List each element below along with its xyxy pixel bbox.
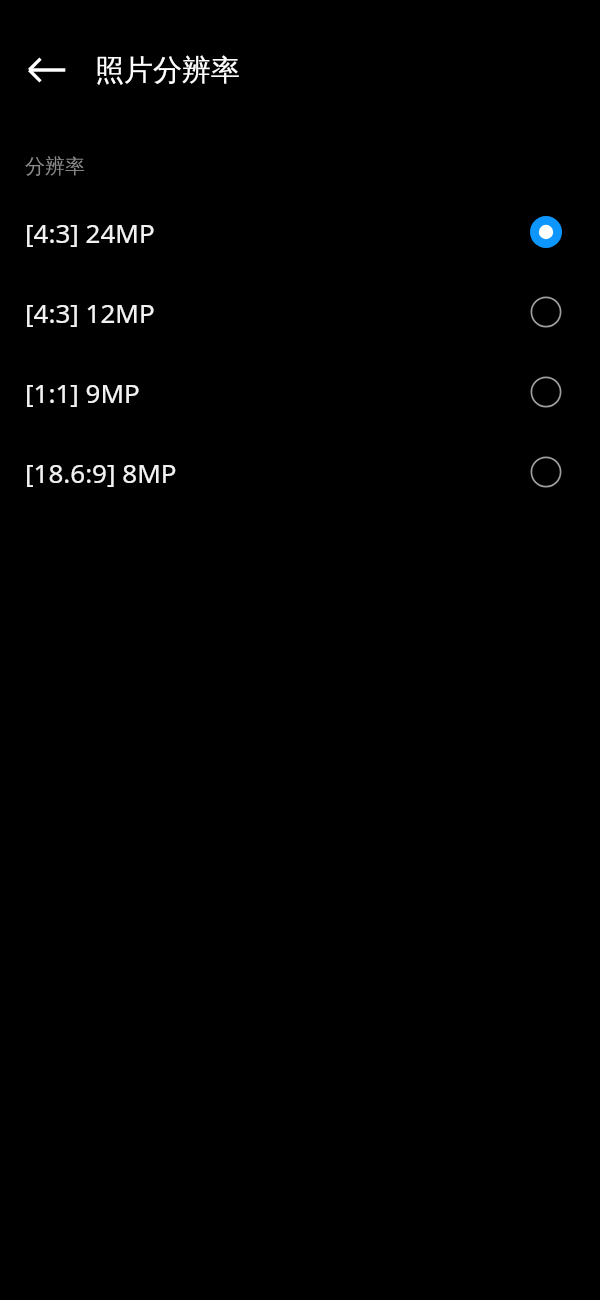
button[interactable]: [18.6:9] 8MP <box>0 432 600 512</box>
button[interactable]: [4:3] 12MP <box>0 272 600 352</box>
staticText: [18.6:9] 8MP <box>25 455 523 490</box>
button[interactable]: Back <box>6 30 86 110</box>
staticText: 分辨率 <box>25 154 85 179</box>
staticText: 照片分辨率 <box>95 52 240 89</box>
button[interactable]: [4:3] 24MP <box>0 192 600 272</box>
staticText: [1:1] 9MP <box>25 375 523 410</box>
button[interactable]: [1:1] 9MP <box>0 352 600 432</box>
staticText: [4:3] 12MP <box>25 295 523 330</box>
staticText: [4:3] 24MP <box>25 215 523 250</box>
